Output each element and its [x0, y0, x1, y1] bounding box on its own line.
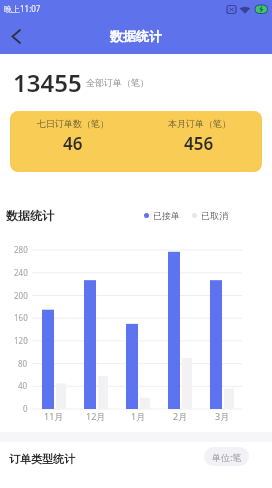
button[interactable]: 七日订单数（笔）	[10, 111, 262, 172]
staticText: 全部订单（笔）	[86, 77, 149, 88]
staticText: 12月	[86, 410, 106, 422]
staticText: 已接单	[153, 210, 180, 221]
staticText: 240	[14, 267, 28, 278]
staticText: 120	[14, 335, 28, 346]
staticText: 40	[18, 380, 28, 391]
staticText: 11月	[44, 410, 64, 422]
button[interactable]: 单位:笔	[204, 447, 249, 466]
staticText: 46	[63, 132, 83, 155]
staticText: 数据统计	[6, 208, 54, 223]
staticText: 数据统计	[110, 28, 162, 44]
staticText: 2月	[173, 410, 188, 422]
staticText: 3月	[215, 410, 230, 422]
staticText: 已取消	[201, 210, 228, 221]
staticText: 单位:笔	[212, 451, 242, 463]
button[interactable]	[2, 22, 30, 50]
staticText: 200	[14, 290, 28, 301]
staticText: 七日订单数（笔）	[37, 118, 109, 129]
staticText: 订单类型统计	[9, 452, 75, 466]
staticText: 0	[23, 403, 28, 414]
staticText: 晚上11:07	[4, 3, 41, 14]
staticText: 13455	[13, 66, 82, 99]
staticText: 80	[18, 358, 28, 369]
staticText: 280	[14, 244, 28, 255]
staticText: 本月订单（笔）	[168, 118, 231, 129]
staticText: 456	[184, 132, 214, 155]
staticText: 160	[14, 312, 28, 323]
staticText: 1月	[131, 410, 146, 422]
